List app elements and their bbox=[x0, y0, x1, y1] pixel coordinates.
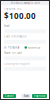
staticText: Card information bbox=[4, 35, 27, 38]
staticText: Personal bbox=[7, 46, 19, 49]
staticText: Pay Acme Inc. bbox=[4, 7, 22, 10]
staticText: checkout.example.com bbox=[10, 1, 39, 5]
button[interactable]: Cancel bbox=[3, 94, 16, 98]
staticText: Country or region bbox=[4, 62, 30, 65]
button[interactable]: Personal bbox=[4, 46, 19, 49]
staticText: Pay now bbox=[34, 94, 45, 98]
button[interactable]: Business bbox=[24, 46, 40, 49]
staticText: Business bbox=[28, 46, 40, 49]
staticText: Back bbox=[23, 94, 28, 98]
button[interactable]: Back bbox=[21, 94, 30, 98]
button[interactable]: Pay now bbox=[32, 94, 47, 98]
staticText: Email bbox=[4, 24, 10, 28]
staticText: Name on card bbox=[4, 51, 22, 55]
staticText: Cancel bbox=[5, 94, 14, 98]
staticText: $100.00 bbox=[4, 10, 36, 21]
